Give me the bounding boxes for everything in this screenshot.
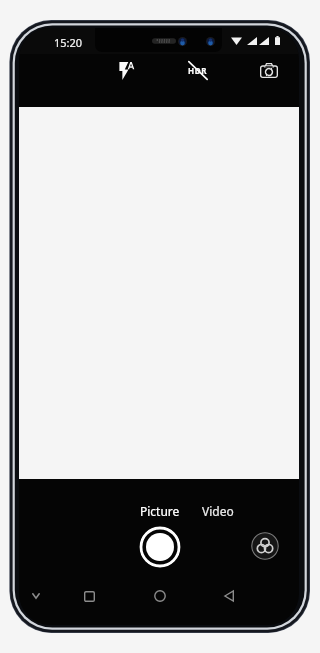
staticText: 15:20 [54, 35, 83, 50]
button[interactable]: Hide [20, 580, 52, 612]
button[interactable]: Filters [251, 532, 279, 560]
button[interactable]: Shutter [139, 526, 181, 568]
button[interactable]: Picture [140, 503, 180, 519]
button[interactable]: Recents [73, 580, 105, 612]
button[interactable]: Home [144, 580, 175, 611]
staticText: HDR [188, 65, 208, 76]
button[interactable]: Switch camera [249, 51, 288, 90]
button[interactable]: Back [213, 580, 245, 612]
button[interactable]: Flash auto [106, 51, 146, 91]
button[interactable]: Video [202, 503, 234, 519]
button[interactable]: HDR off [178, 50, 218, 90]
